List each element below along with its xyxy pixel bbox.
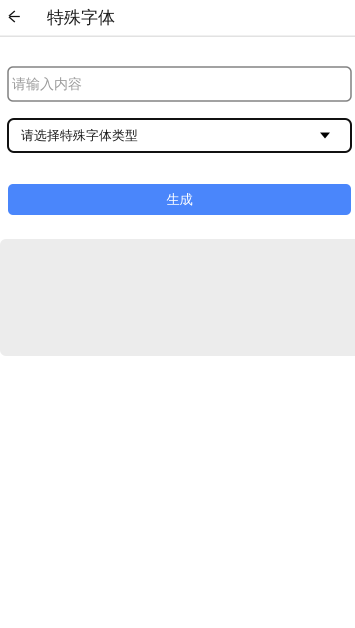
staticText: 生成 [166, 191, 192, 208]
button[interactable]: Back [0, 0, 33, 37]
button[interactable]: 请选择特殊字体类型 [0, 119, 351, 152]
staticText: 请选择特殊字体类型 [21, 127, 138, 143]
button[interactable]: 请输入内容 [0, 67, 351, 101]
button[interactable]: 生成 [0, 184, 351, 215]
staticText: 请输入内容 [12, 75, 82, 93]
staticText: 特殊字体 [47, 7, 115, 28]
